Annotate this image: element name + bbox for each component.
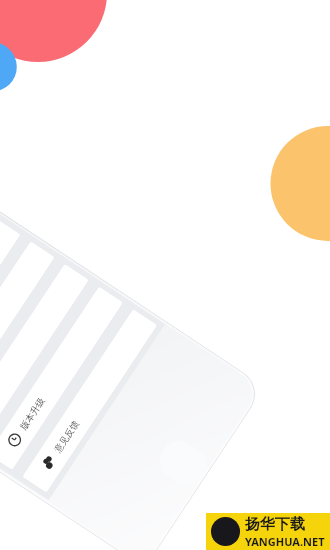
staticText: 意见反馈 xyxy=(52,418,81,454)
button[interactable] xyxy=(0,241,55,425)
staticText: 扬华下载 xyxy=(245,515,305,534)
staticText: YANGHUA.NET xyxy=(245,534,325,549)
button[interactable]: 版本升级 xyxy=(0,286,123,470)
button[interactable] xyxy=(0,218,20,402)
staticText: 版本升级 xyxy=(18,396,47,432)
button[interactable]: 意见反馈 xyxy=(22,309,157,493)
button[interactable] xyxy=(0,264,89,447)
